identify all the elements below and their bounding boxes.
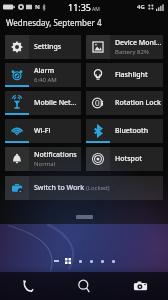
staticText: 11:35 [68,1,92,13]
staticText: 6:40 AM [34,76,57,84]
staticText: Wi-Fi [34,126,51,136]
staticText: Settings [34,42,62,52]
button[interactable]: Search [56,272,112,300]
button[interactable]: Settings [5,35,81,59]
staticText: Mobile Network [34,98,81,108]
button[interactable]: Device Monitor [86,35,163,59]
staticText: AM [92,6,100,13]
staticText: Notifications [34,150,77,160]
button[interactable]: Hotspot [86,147,163,171]
button[interactable]: Rotation Lock [86,91,163,115]
staticText: Battery 82% [115,48,149,56]
staticText: Device Monitor [115,38,163,48]
staticText: Normal [34,160,56,168]
button[interactable]: Flashlight [86,63,163,87]
button[interactable]: Alarm [5,63,81,87]
button[interactable]: Bluetooth [86,119,163,143]
staticText: Hotspot [115,154,142,164]
button[interactable]: Switch to Work [5,176,163,200]
button[interactable]: Notifications [5,147,81,171]
button[interactable]: Mobile Network [5,91,81,115]
staticText: 4G [137,3,145,11]
staticText: Flashlight [115,70,148,80]
button[interactable]: Phone [0,272,56,300]
staticText: Switch to Work [34,183,86,193]
staticText: Alarm [34,66,55,76]
staticText: Rotation Lock [115,98,161,108]
staticText: N [35,3,40,11]
staticText: Bluetooth [115,126,149,136]
button[interactable]: Camera [112,272,168,300]
button[interactable]: Wi-Fi [5,119,81,143]
staticText: Wednesday, September 4 [6,17,102,28]
staticText: (Locked) [86,184,110,192]
